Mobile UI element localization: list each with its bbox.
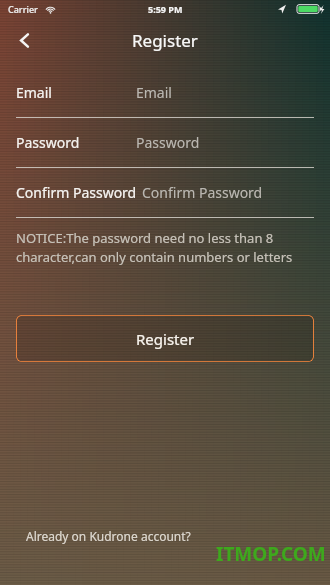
- button[interactable]: Back: [2, 18, 46, 62]
- staticText: NOTICE:The password need no less than 8 …: [16, 229, 314, 266]
- staticText: Register: [132, 29, 198, 52]
- button[interactable]: Register: [16, 315, 314, 362]
- staticText: Confirm Password: [16, 183, 137, 202]
- button[interactable]: Email: [0, 81, 330, 118]
- staticText: 5:59 PM: [148, 3, 183, 15]
- staticText: ITMOP.COM: [216, 541, 326, 567]
- button[interactable]: Password: [0, 131, 330, 168]
- staticText: Email: [16, 83, 52, 102]
- staticText: Carrier: [8, 3, 38, 15]
- staticText: Password: [16, 133, 80, 152]
- staticText: Password: [136, 133, 200, 152]
- staticText: Email: [136, 83, 172, 102]
- staticText: Confirm Password: [142, 183, 263, 202]
- staticText: Already on Kudrone account?: [26, 528, 191, 544]
- button[interactable]: Already on Kudrone account?: [22, 523, 195, 549]
- button[interactable]: Confirm Password: [0, 181, 330, 218]
- staticText: Register: [136, 329, 195, 349]
